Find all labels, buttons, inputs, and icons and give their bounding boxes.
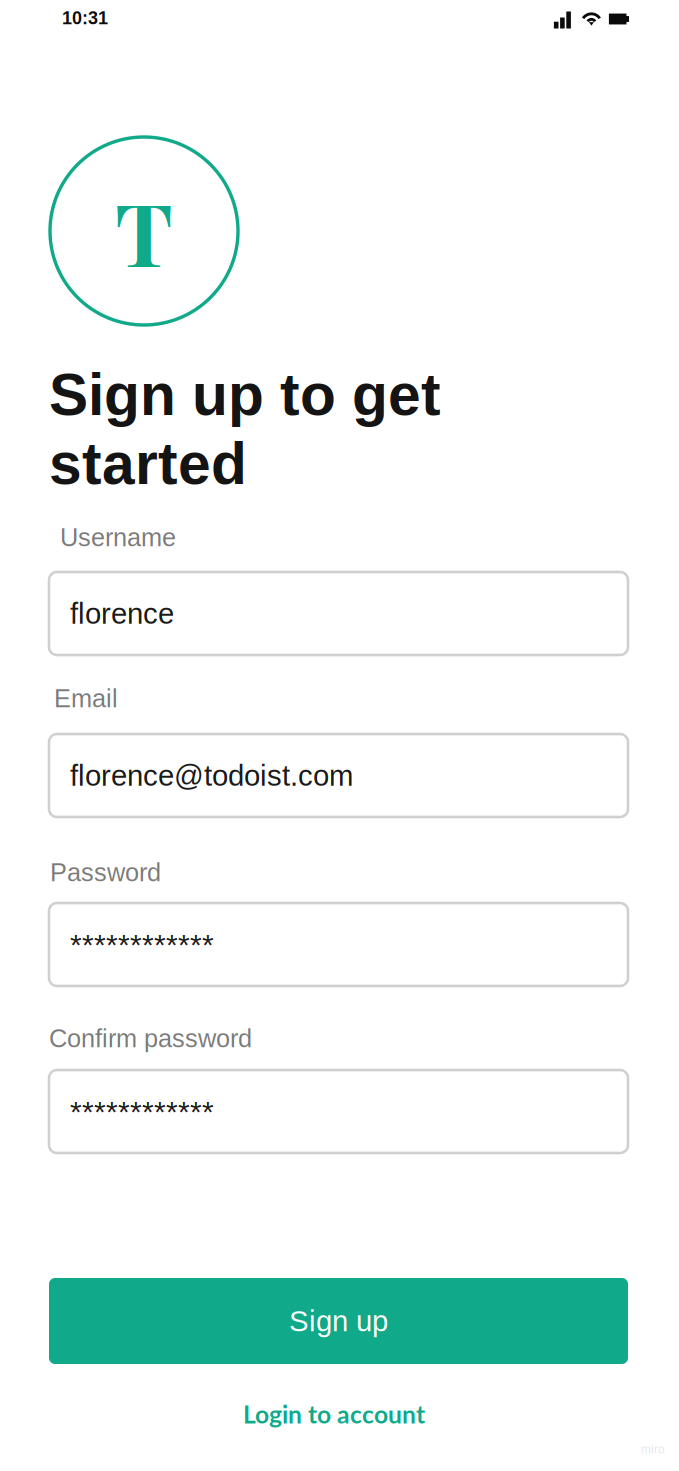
staticText: Confirm password xyxy=(49,1024,252,1053)
staticText: Password xyxy=(50,858,161,887)
staticText: ************ xyxy=(70,928,214,961)
staticText: Login to account xyxy=(243,1399,425,1429)
staticText: Username xyxy=(60,523,176,552)
staticText: started xyxy=(49,431,247,496)
staticText: miro xyxy=(641,1443,665,1456)
staticText: Email xyxy=(54,684,118,713)
button[interactable]: Login to account xyxy=(49,1400,628,1428)
staticText: Sign up xyxy=(289,1305,388,1337)
staticText: 10:31 xyxy=(62,8,108,28)
button[interactable]: Sign up xyxy=(49,1278,628,1364)
staticText: Sign up to get xyxy=(49,362,441,427)
staticText: ************ xyxy=(70,1095,214,1128)
staticText: florence xyxy=(70,597,174,630)
staticText: florence@todoist.com xyxy=(70,759,353,792)
staticText: T xyxy=(115,173,173,289)
